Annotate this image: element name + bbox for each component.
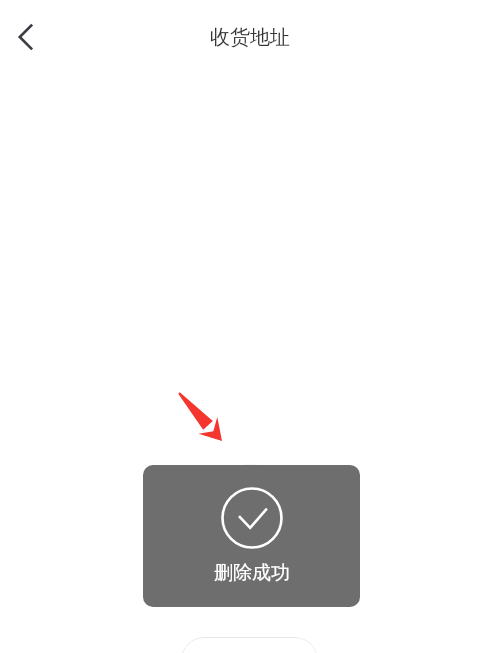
button[interactable]: Back <box>4 15 48 59</box>
staticText: 收货地址 <box>210 25 290 50</box>
staticText: 您还没有收货地址哦! <box>152 576 347 605</box>
button[interactable]: 删除成功 <box>143 465 360 607</box>
staticText: 删除成功 <box>214 561 290 585</box>
button[interactable] <box>181 637 318 653</box>
